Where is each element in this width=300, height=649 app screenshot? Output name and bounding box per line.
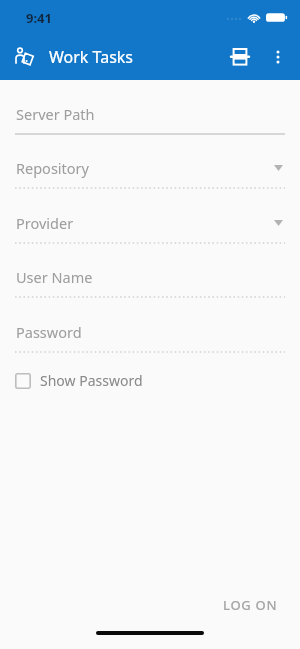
button[interactable]: Server Path [0, 102, 300, 135]
button[interactable]: More options [260, 37, 296, 77]
staticText: 9:41 [26, 9, 52, 27]
staticText: Repository [16, 158, 89, 178]
button[interactable]: Show Password [13, 367, 145, 394]
button[interactable]: Repository [0, 156, 300, 189]
staticText: Provider [16, 213, 74, 233]
staticText: LOG ON [223, 596, 278, 614]
staticText: Work Tasks [49, 46, 134, 68]
button[interactable]: Scan [220, 37, 260, 77]
button[interactable]: LOG ON [213, 589, 288, 621]
staticText: User Name [16, 267, 93, 287]
button[interactable]: Provider [0, 211, 300, 244]
button[interactable]: User Name [0, 265, 300, 298]
staticText: Server Path [16, 104, 95, 124]
button[interactable]: App logo [11, 44, 37, 70]
staticText: Show Password [40, 371, 143, 390]
staticText: Password [16, 322, 82, 342]
button[interactable]: Password [0, 320, 300, 353]
